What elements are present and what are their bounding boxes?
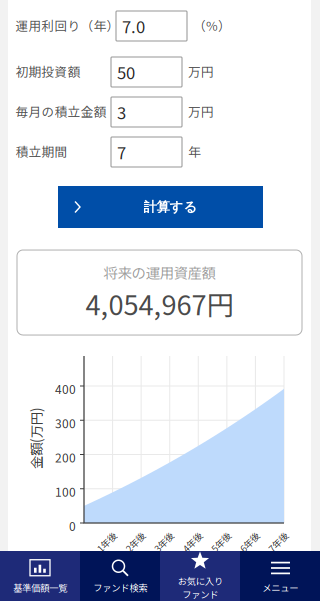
staticText: 6年後 [238, 535, 261, 549]
staticText: 計算する [143, 199, 197, 215]
staticText: 将来の運用資産額 [103, 262, 215, 283]
button[interactable]: メニュー [240, 551, 320, 601]
staticText: （%） [193, 16, 231, 34]
staticText: 初期投資額 [15, 62, 80, 80]
staticText: 50 [117, 60, 135, 84]
staticText: 運用利回り（年） [15, 16, 119, 34]
staticText: 4年後 [181, 535, 204, 549]
staticText: 0 [69, 517, 76, 534]
staticText: お気に入り ファンド [177, 574, 222, 601]
staticText: 7 [117, 140, 126, 164]
button[interactable]: お気に入り ファンド [160, 551, 240, 601]
staticText: 万円 [188, 62, 214, 80]
staticText: 200 [55, 448, 76, 466]
staticText: 3年後 [152, 535, 175, 549]
staticText: 積立期間 [15, 142, 67, 160]
staticText: 基準価額一覧 [13, 581, 67, 594]
button[interactable]: 計算する [58, 186, 263, 228]
button[interactable]: ファンド検索 [80, 551, 160, 601]
staticText: 7.0 [122, 14, 145, 38]
button[interactable]: 基準価額一覧 [0, 551, 80, 601]
staticText: 300 [55, 414, 76, 432]
staticText: メニュー [262, 581, 298, 594]
staticText: 100 [55, 483, 76, 500]
staticText: 1年後 [95, 535, 118, 549]
staticText: 年 [188, 142, 201, 160]
staticText: 7年後 [266, 535, 289, 549]
staticText: 400 [55, 380, 76, 397]
staticText: 5年後 [209, 535, 232, 549]
staticText: 4,054,967円 [85, 284, 233, 323]
staticText: 2年後 [124, 535, 147, 549]
staticText: 3 [117, 100, 126, 124]
staticText: 毎月の積立金額 [15, 102, 106, 120]
staticText: 万円 [188, 102, 214, 120]
staticText: 金額(万円) [5, 428, 67, 448]
staticText: ファンド検索 [93, 581, 147, 594]
